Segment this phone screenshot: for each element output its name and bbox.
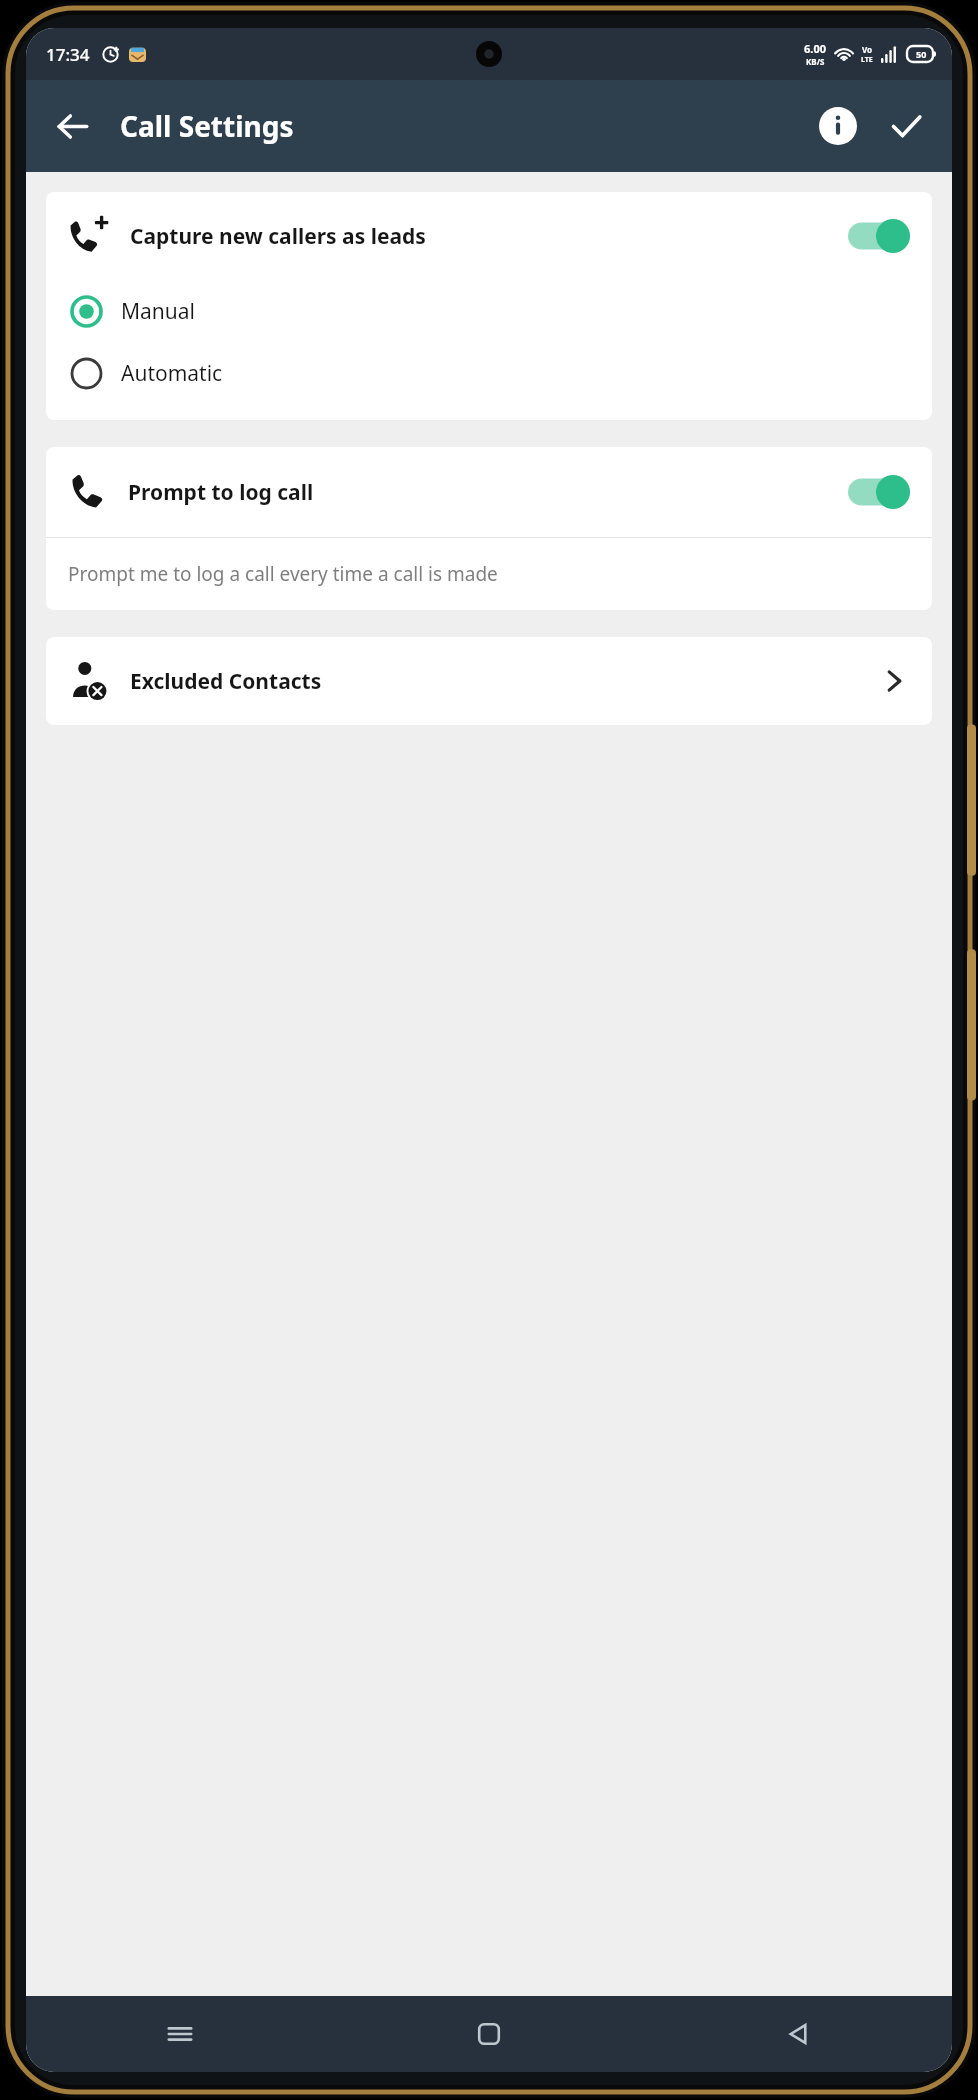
button[interactable]: Toggle <box>848 219 910 253</box>
button[interactable]: Toggle <box>848 475 910 509</box>
button[interactable]: Excluded Contacts <box>46 637 932 725</box>
staticText: KB/S <box>806 56 825 67</box>
staticText: LTE <box>861 55 873 65</box>
staticText: Manual <box>121 297 195 326</box>
staticText: Automatic <box>121 359 223 388</box>
button[interactable]: Automatic <box>46 342 932 404</box>
staticText: Call Settings <box>120 107 294 145</box>
staticText: 17:34 <box>46 43 90 66</box>
staticText: 6.00 <box>804 41 826 56</box>
button[interactable]: Home <box>334 1996 643 2072</box>
button[interactable]: Information <box>814 102 862 150</box>
staticText: Capture new callers as leads <box>130 222 426 251</box>
button[interactable]: Manual <box>46 280 932 342</box>
button[interactable]: Save <box>882 102 930 150</box>
staticText: Vo <box>862 44 873 55</box>
button[interactable]: Back <box>643 1996 952 2072</box>
staticText: Prompt to log call <box>128 478 314 507</box>
button[interactable]: Recents <box>26 1996 334 2072</box>
button[interactable]: Capture new callers as leads <box>46 192 932 280</box>
staticText: Excluded Contacts <box>130 667 322 696</box>
button[interactable]: Back <box>48 102 96 150</box>
staticText: 50 <box>916 48 927 60</box>
button[interactable]: Prompt to log call <box>46 447 932 537</box>
staticText: Prompt me to log a call every time a cal… <box>68 561 498 587</box>
